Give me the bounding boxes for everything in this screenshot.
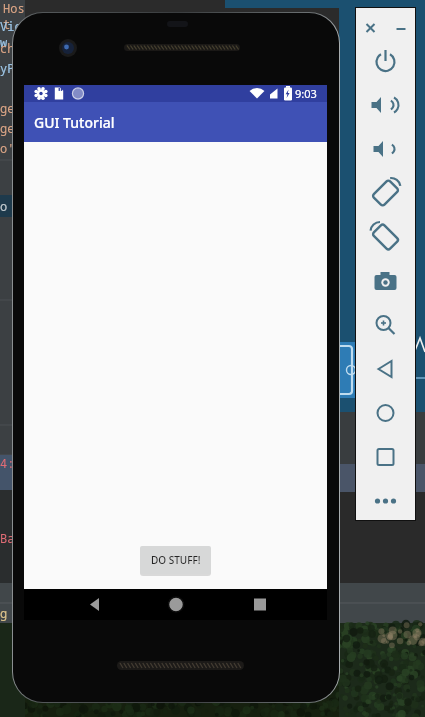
staticText: ge [0,100,15,116]
button[interactable]: Recents [240,589,280,620]
staticText: 9:03 [295,86,317,101]
staticText: Host [3,0,28,32]
staticText: o s [0,198,22,214]
staticText: ch [0,40,15,56]
button[interactable]: Back [75,589,115,620]
staticText: View [0,18,25,50]
staticText: g o [0,605,22,621]
staticText: GUI Tutorial [34,113,115,132]
staticText: Ba [0,530,15,546]
staticText: ge' [0,120,22,136]
button[interactable]: DO STUFF! [140,546,211,574]
staticText: 4: [0,455,15,471]
button[interactable]: Home [156,589,196,620]
staticText: o' [0,140,15,156]
staticText: yP [0,60,15,76]
staticText: DO STUFF! [151,553,201,567]
